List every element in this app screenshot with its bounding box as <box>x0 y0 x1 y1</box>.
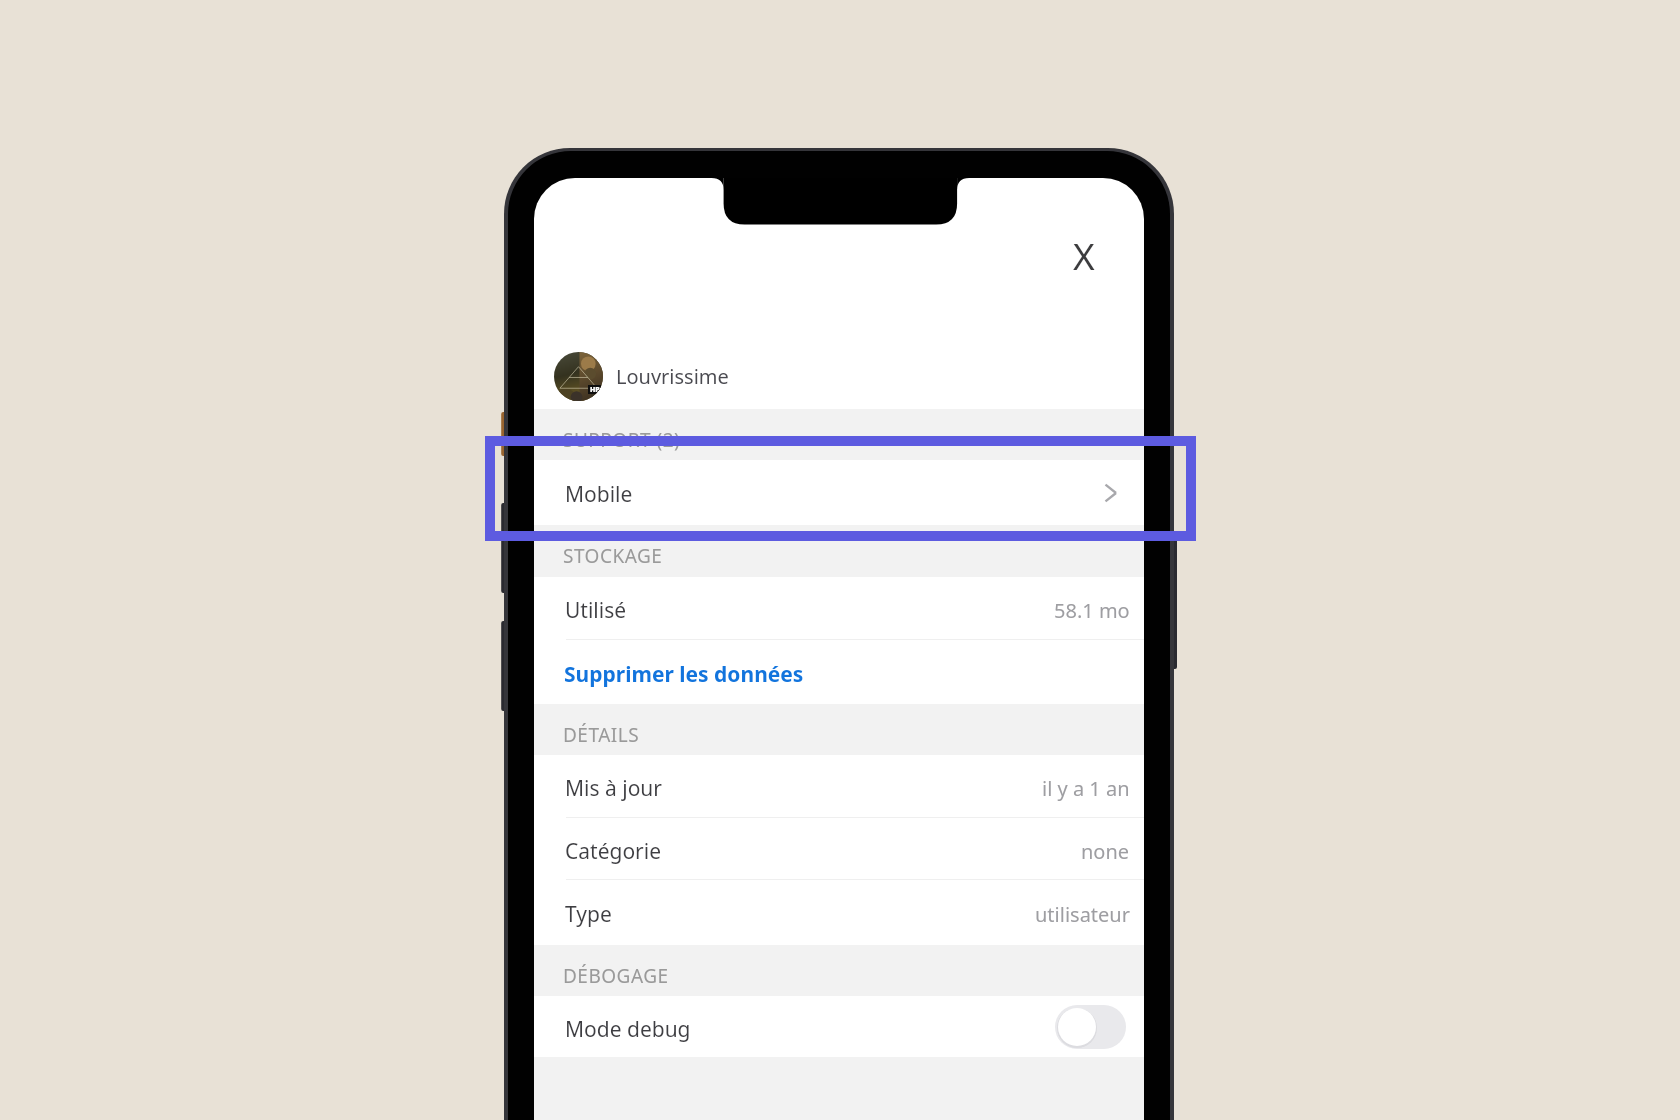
staticText: Catégorie <box>565 837 662 866</box>
button[interactable]: Utilisé <box>534 577 1144 640</box>
staticText: utilisateur <box>1035 901 1130 928</box>
staticText: Louvrissime <box>616 363 729 390</box>
staticText: X <box>1073 230 1095 280</box>
staticText: il y a 1 an <box>1042 775 1130 802</box>
button[interactable]: Mis à jour <box>534 755 1144 818</box>
button[interactable]: Mode debug <box>534 996 1144 1057</box>
button[interactable]: HP <box>534 344 1144 409</box>
button[interactable]: Fermer <box>1058 229 1110 281</box>
staticText: STOCKAGE <box>563 543 663 569</box>
staticText: Mis à jour <box>565 774 662 803</box>
staticText: Utilisé <box>565 596 627 625</box>
button[interactable]: Supprimer les données <box>534 640 1144 704</box>
staticText: DÉBOGAGE <box>563 963 669 989</box>
staticText: Type <box>565 900 612 929</box>
button[interactable]: Mobile <box>534 460 1144 525</box>
staticText: none <box>1081 838 1130 865</box>
staticText: SUPPORT (2) <box>563 427 681 453</box>
staticText: HP <box>590 385 600 394</box>
button[interactable]: Activer le mode debug <box>1055 1005 1126 1049</box>
staticText: 58.1 mo <box>1054 597 1130 624</box>
staticText: Supprimer les données <box>564 660 804 689</box>
staticText: Mode debug <box>565 1015 691 1044</box>
staticText: Mobile <box>565 480 633 509</box>
staticText: DÉTAILS <box>563 722 640 748</box>
button[interactable]: Catégorie <box>534 818 1144 880</box>
button[interactable]: Type <box>534 880 1144 945</box>
